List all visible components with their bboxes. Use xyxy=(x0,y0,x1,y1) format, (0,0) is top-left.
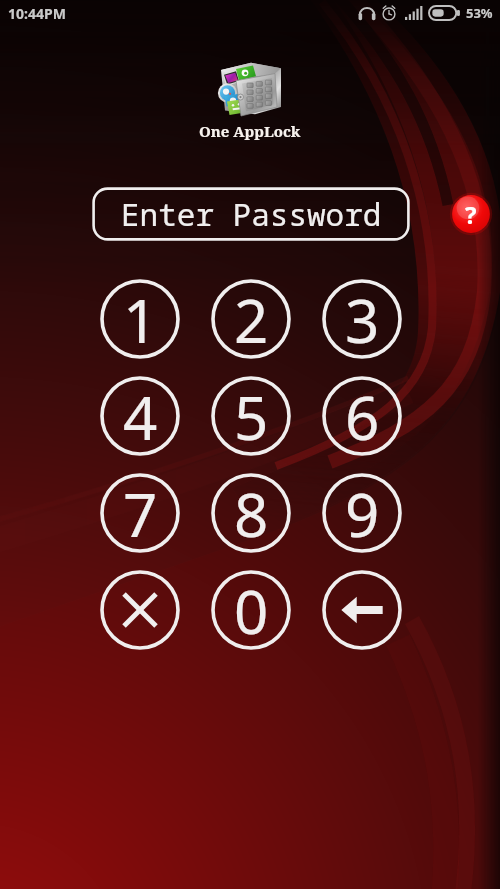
staticText: 5 xyxy=(234,376,269,456)
button[interactable]: Enter Password xyxy=(92,187,410,241)
button[interactable]: 2 xyxy=(195,270,306,367)
staticText: 8 xyxy=(234,473,269,553)
button[interactable]: 5 xyxy=(195,367,306,464)
button[interactable]: 9 xyxy=(306,464,417,561)
button[interactable]: 3 xyxy=(306,270,417,367)
staticText: 4 xyxy=(123,376,158,456)
button[interactable]: Clear xyxy=(84,561,195,658)
button[interactable]: 7 xyxy=(84,464,195,561)
staticText: 2 xyxy=(234,279,269,359)
button[interactable]: Backspace xyxy=(306,561,417,658)
button[interactable]: Help xyxy=(450,193,492,235)
button[interactable]: 0 xyxy=(195,561,306,658)
button[interactable]: 4 xyxy=(84,367,195,464)
staticText: One AppLock xyxy=(199,121,301,141)
staticText: 3 xyxy=(345,279,380,359)
staticText: 7 xyxy=(123,473,158,553)
button[interactable]: 1 xyxy=(84,270,195,367)
staticText: 10:44PM xyxy=(8,4,66,23)
button[interactable]: 6 xyxy=(306,367,417,464)
staticText: Enter Password xyxy=(121,193,382,235)
button[interactable]: 8 xyxy=(195,464,306,561)
staticText: 1 xyxy=(123,279,158,359)
staticText: 0 xyxy=(234,570,269,650)
staticText: 9 xyxy=(345,473,380,553)
staticText: 53% xyxy=(466,4,493,22)
staticText: 6 xyxy=(345,376,380,456)
staticText: ? xyxy=(465,198,477,231)
